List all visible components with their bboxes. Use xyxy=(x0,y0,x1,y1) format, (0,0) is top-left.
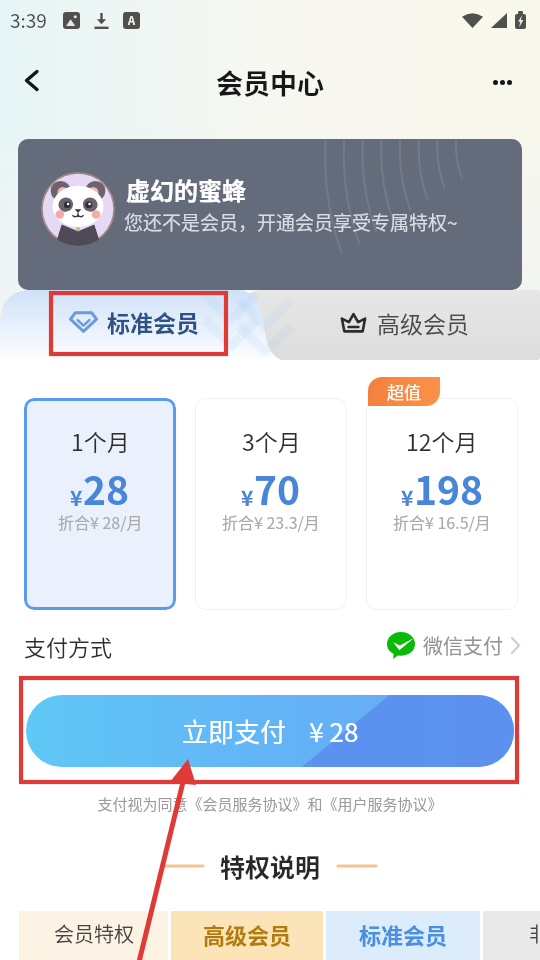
staticText: 虚幻的蜜蜂 xyxy=(126,172,246,207)
staticText: 标准会员 xyxy=(359,918,448,950)
staticText: 非会员 xyxy=(529,919,540,948)
staticText: 支付视为同意《会员服务协议》和《用户服务协议》 xyxy=(0,793,540,815)
button[interactable]: 标准会员 xyxy=(0,290,250,362)
button[interactable]: Back xyxy=(12,61,50,99)
staticText: 折合¥ 23.3/月 xyxy=(222,510,320,533)
staticText: ¥ xyxy=(241,482,254,512)
staticText: 折合¥ 28/月 xyxy=(58,510,143,533)
staticText: 标准会员 xyxy=(107,305,199,338)
staticText: 12个月 xyxy=(406,424,478,457)
button[interactable]: 1个月 xyxy=(24,398,176,610)
staticText: 会员特权 xyxy=(54,919,134,948)
staticText: 微信支付 xyxy=(423,631,503,660)
staticText: 立即支付 ¥ 28 xyxy=(182,712,359,750)
staticText: 折合¥ 16.5/月 xyxy=(393,510,491,533)
staticText: 您还不是会员，开通会员享受专属特权~ xyxy=(124,208,458,236)
button[interactable]: 高级会员 xyxy=(300,290,520,362)
staticText: ¥ xyxy=(401,482,414,512)
button[interactable]: 3个月 xyxy=(195,398,347,610)
staticText: 特权说明 xyxy=(220,848,321,884)
staticText: A xyxy=(128,12,136,28)
staticText: 高级会员 xyxy=(377,306,469,339)
staticText: 198 xyxy=(414,460,484,516)
staticText: 支付方式 xyxy=(24,630,113,660)
staticText: 1个月 xyxy=(71,424,130,457)
staticText: 超值 xyxy=(387,379,421,404)
button[interactable]: 12个月 xyxy=(366,398,518,610)
staticText: 70 xyxy=(254,460,301,516)
staticText: 会员中心 xyxy=(216,63,324,102)
staticText: 3:39 xyxy=(10,6,47,34)
staticText: ¥ xyxy=(70,482,83,512)
staticText: 28 xyxy=(83,460,130,516)
button[interactable]: 微信支付 xyxy=(387,631,520,660)
staticText: 高级会员 xyxy=(203,918,292,950)
staticText: 3个月 xyxy=(242,424,301,457)
button[interactable]: 立即支付 ¥ 28 xyxy=(26,695,514,767)
button[interactable]: More options xyxy=(483,63,521,101)
